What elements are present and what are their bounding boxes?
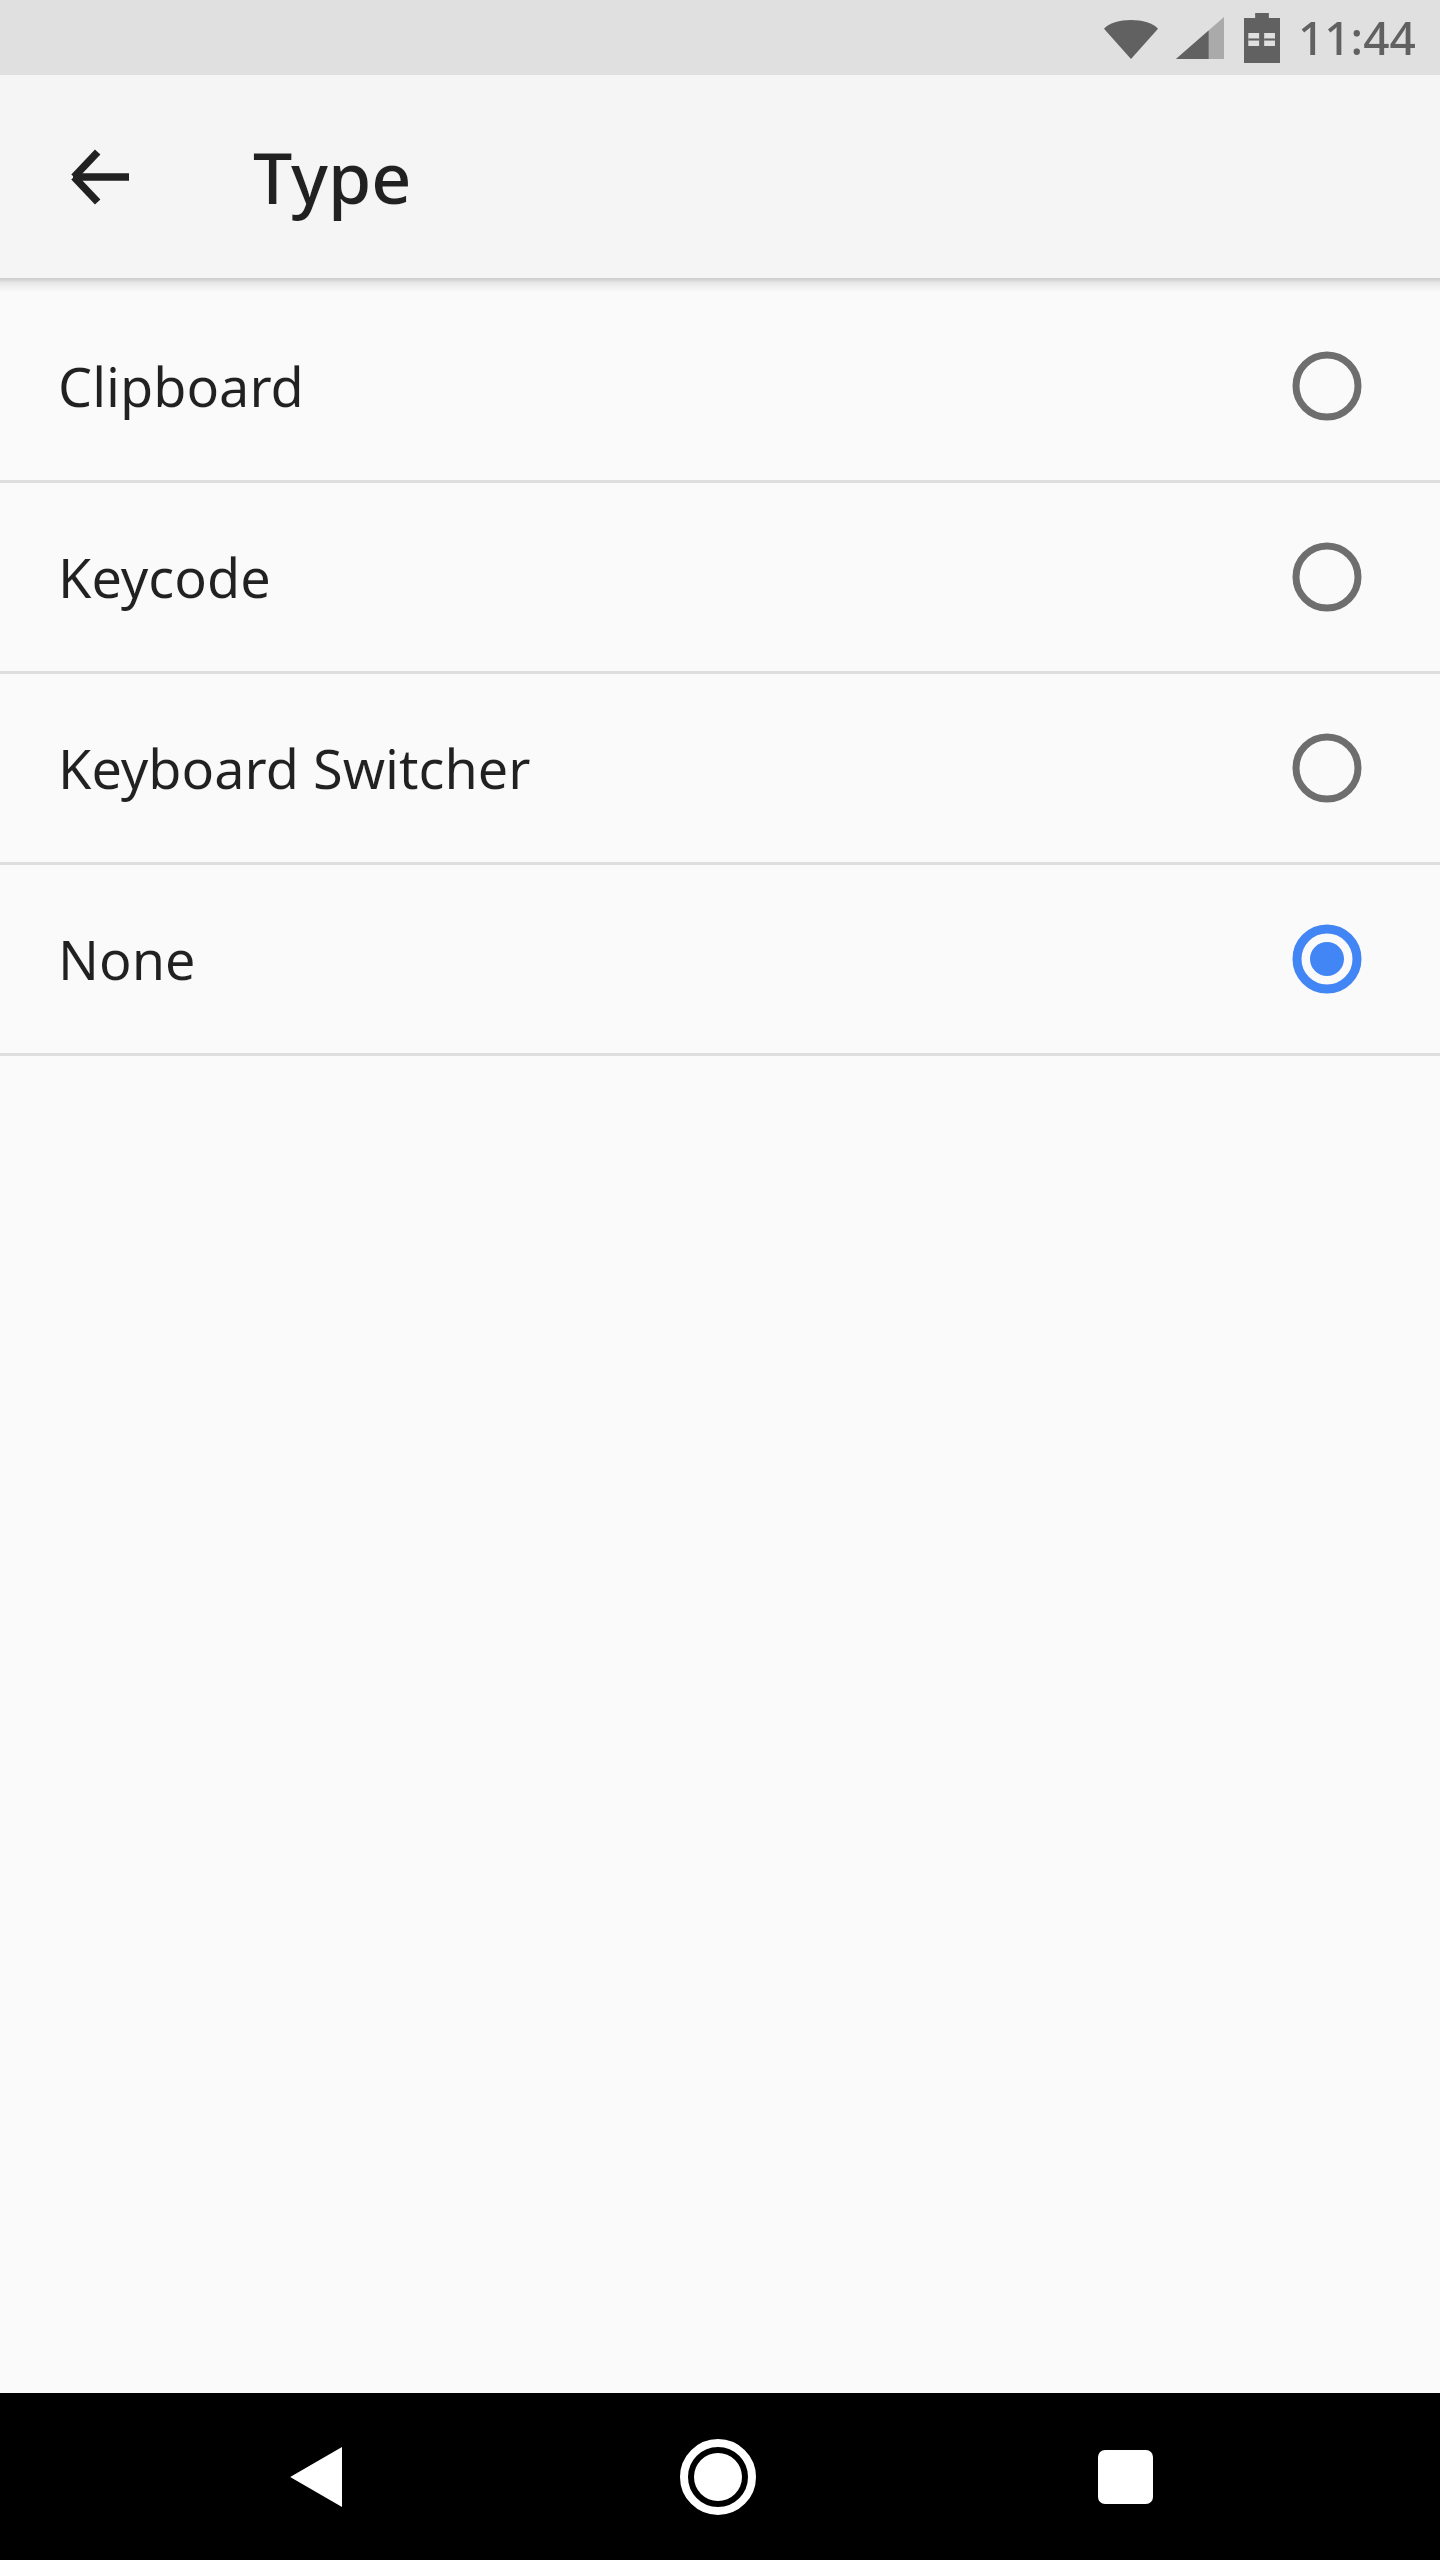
button[interactable]: Navigate up [28, 105, 172, 249]
button[interactable]: None [0, 865, 1440, 1053]
button[interactable]: Clipboard [0, 292, 1440, 480]
staticText: Type [253, 129, 412, 224]
staticText: 11:44 [1298, 6, 1416, 69]
button[interactable]: Home [628, 2393, 808, 2560]
staticText: Keycode [58, 540, 271, 614]
button[interactable]: Keyboard Switcher [0, 674, 1440, 862]
staticText: Clipboard [58, 349, 304, 423]
staticText: Keyboard Switcher [58, 731, 531, 805]
staticText: None [58, 922, 196, 996]
button[interactable]: Back [225, 2393, 405, 2560]
button[interactable]: Recent apps [1035, 2393, 1215, 2560]
button[interactable]: Keycode [0, 483, 1440, 671]
